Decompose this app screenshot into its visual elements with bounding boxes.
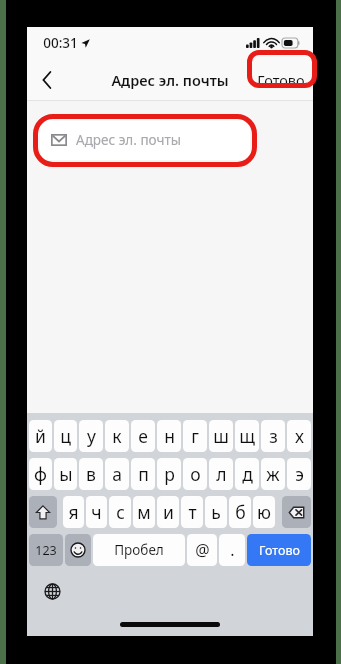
button[interactable]: с	[109, 496, 131, 528]
button[interactable]: .	[219, 534, 245, 566]
button[interactable]: ы	[54, 458, 77, 490]
button[interactable]: Готово	[247, 534, 311, 566]
staticText: ж	[266, 462, 280, 486]
button[interactable]: Удалить	[282, 496, 311, 528]
staticText: ш	[213, 424, 229, 448]
button[interactable]: п	[131, 458, 155, 490]
button[interactable]: ч	[86, 496, 107, 528]
staticText: о	[190, 462, 201, 486]
button[interactable]: к	[105, 420, 129, 452]
button[interactable]: Сменить язык	[39, 578, 65, 604]
button[interactable]: @	[187, 534, 217, 566]
button[interactable]: р	[157, 458, 181, 490]
staticText: ф	[34, 462, 47, 486]
staticText: х	[295, 424, 304, 448]
staticText: а	[112, 462, 122, 486]
staticText: 00:31	[43, 34, 78, 52]
button[interactable]: Адрес эл. почты	[40, 120, 250, 160]
button[interactable]: ц	[54, 420, 77, 452]
staticText: б	[235, 500, 246, 524]
button[interactable]: ш	[209, 420, 233, 452]
button[interactable]: Готово	[257, 70, 305, 90]
staticText: ю	[257, 500, 271, 524]
button[interactable]: э	[287, 458, 311, 490]
staticText: г	[191, 424, 199, 448]
staticText: п	[138, 462, 149, 486]
staticText: т	[188, 500, 197, 524]
button[interactable]: Пробел	[93, 534, 185, 566]
staticText: с	[116, 500, 125, 524]
button[interactable]: Shift	[29, 496, 57, 528]
staticText: ц	[60, 424, 71, 448]
button[interactable]: я	[63, 496, 84, 528]
staticText: я	[68, 500, 79, 524]
button[interactable]: щ	[235, 420, 259, 452]
button[interactable]: д	[235, 458, 259, 490]
staticText: и	[163, 500, 174, 524]
staticText: к	[112, 424, 122, 448]
staticText: @	[195, 539, 210, 561]
button[interactable]: л	[209, 458, 233, 490]
button[interactable]: з	[261, 420, 285, 452]
staticText: й	[35, 424, 46, 448]
staticText: 123	[35, 542, 57, 559]
button[interactable]: т	[181, 496, 203, 528]
staticText: Готово	[259, 542, 300, 559]
staticText: ы	[59, 462, 73, 486]
button[interactable]: е	[131, 420, 155, 452]
staticText: ч	[91, 500, 102, 524]
button[interactable]: Назад	[27, 59, 67, 101]
staticText: Готово	[257, 70, 305, 90]
staticText: з	[269, 424, 278, 448]
staticText: э	[295, 462, 304, 486]
button[interactable]: Эмодзи	[65, 534, 91, 566]
button[interactable]: а	[105, 458, 129, 490]
button[interactable]: о	[183, 458, 207, 490]
button[interactable]: ь	[205, 496, 227, 528]
button[interactable]: в	[79, 458, 103, 490]
staticText: н	[164, 424, 175, 448]
staticText: .	[230, 539, 235, 561]
button[interactable]: у	[79, 420, 103, 452]
button[interactable]: ф	[29, 458, 52, 490]
staticText: Пробел	[114, 541, 164, 559]
staticText: д	[242, 462, 253, 486]
button[interactable]: й	[29, 420, 52, 452]
staticText: щ	[239, 424, 255, 448]
staticText: у	[87, 424, 96, 448]
button[interactable]: н	[157, 420, 181, 452]
button[interactable]: ю	[253, 496, 275, 528]
button[interactable]: ж	[261, 458, 285, 490]
staticText: р	[164, 462, 175, 486]
button[interactable]: б	[229, 496, 251, 528]
staticText: м	[137, 500, 151, 524]
staticText: Адрес эл. почты	[76, 131, 181, 149]
button[interactable]: г	[183, 420, 207, 452]
staticText: Адрес эл. почты	[111, 70, 229, 90]
button[interactable]: м	[133, 496, 155, 528]
button[interactable]: 123	[29, 534, 63, 566]
staticText: е	[138, 424, 148, 448]
staticText: ь	[211, 500, 221, 524]
staticText: в	[86, 462, 96, 486]
button[interactable]: х	[287, 420, 311, 452]
staticText: л	[216, 462, 227, 486]
button[interactable]: и	[157, 496, 179, 528]
